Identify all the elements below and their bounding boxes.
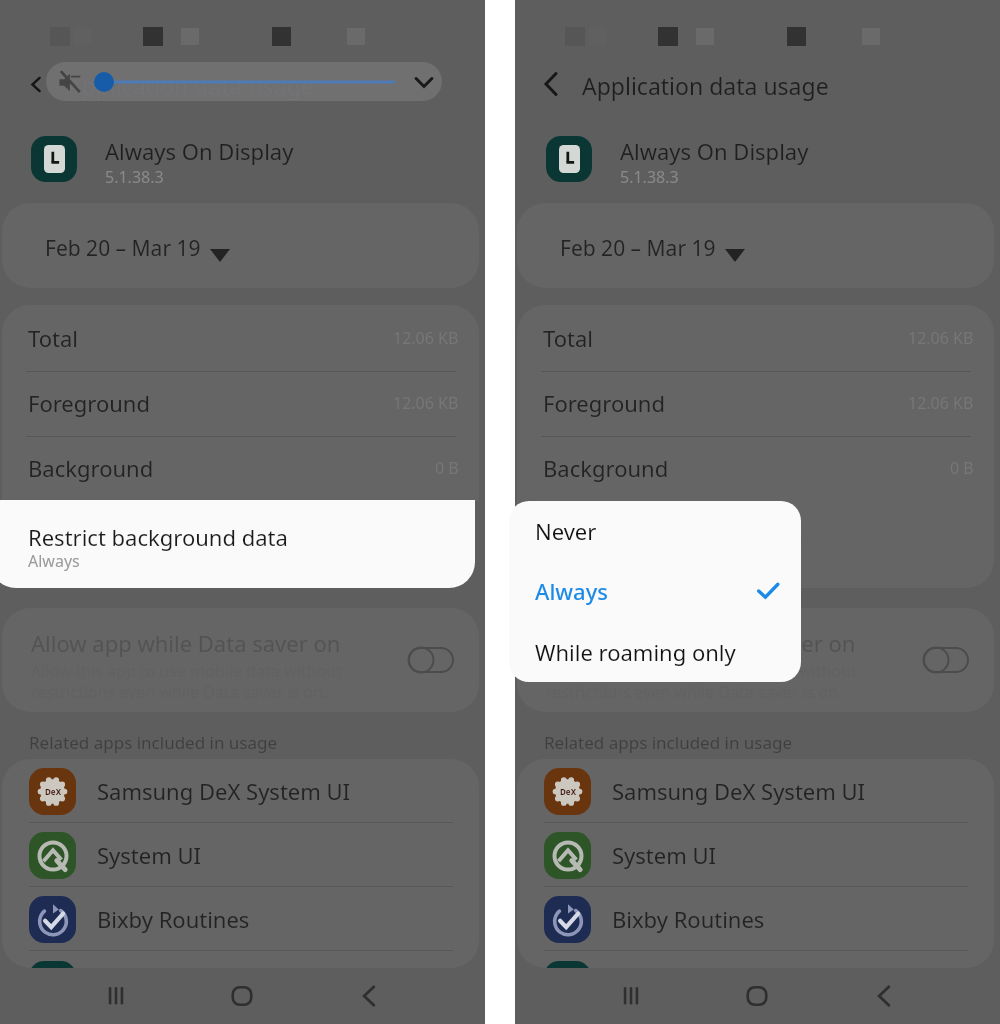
staticText: Application data usage: [67, 70, 314, 101]
button[interactable]: DeX: [29, 759, 479, 823]
button[interactable]: Feb 20 – Mar 19: [2, 203, 479, 288]
staticText: Foreground: [543, 388, 665, 418]
button[interactable]: Total: [543, 305, 974, 370]
button[interactable]: System UI: [29, 823, 479, 887]
staticText: DeX: [45, 786, 61, 797]
button[interactable]: Expand volume: [408, 66, 440, 98]
staticText: 0 B: [950, 457, 974, 479]
button[interactable]: Restrict background data: [517, 500, 994, 588]
button[interactable]: Back: [850, 968, 918, 1024]
button[interactable]: Home: [208, 968, 276, 1024]
staticText: Foreground: [28, 388, 150, 418]
button[interactable]: Recents: [597, 968, 665, 1024]
button[interactable]: Back: [16, 62, 56, 106]
button[interactable]: Mute volume: [53, 66, 85, 98]
staticText: Background: [543, 453, 669, 483]
button[interactable]: Recents: [82, 968, 150, 1024]
staticText: Always: [28, 550, 80, 572]
button[interactable]: DeX: [544, 759, 994, 823]
staticText: System UI: [97, 840, 202, 870]
staticText: Feb 20 – Mar 19: [45, 234, 201, 263]
button[interactable]: Allow app while Data saver on: [923, 647, 969, 673]
button[interactable]: Bixby Routines: [544, 887, 994, 951]
staticText: 0 B: [435, 457, 459, 479]
staticText: Bixby Routines: [97, 904, 250, 934]
button[interactable]: Allow app while Data saver on: [2, 608, 479, 712]
staticText: DeX: [560, 786, 576, 797]
staticText: Restrict background data: [28, 522, 288, 552]
staticText: 12.06 KB: [908, 327, 974, 349]
staticText: restrictions even while Data saver is on…: [546, 681, 843, 703]
staticText: Samsung DeX System UI: [97, 776, 351, 806]
button[interactable]: Back: [531, 62, 571, 106]
staticText: System UI: [612, 840, 717, 870]
staticText: Always: [535, 576, 608, 606]
staticText: Always On Display: [105, 136, 294, 166]
staticText: 5.1.38.3: [620, 166, 679, 188]
staticText: 12.06 KB: [908, 392, 974, 414]
staticText: Restrict background data: [543, 522, 803, 552]
staticText: Bixby Routines: [612, 904, 765, 934]
button[interactable]: Bixby Routines: [29, 887, 479, 951]
button[interactable]: Feb 20 – Mar 19: [517, 203, 994, 288]
button[interactable]: Total: [28, 305, 459, 370]
staticText: Never: [535, 516, 597, 546]
staticText: While roaming only: [535, 637, 736, 667]
staticText: Allow this app to use mobile data withou…: [546, 660, 857, 682]
button[interactable]: Foreground: [543, 370, 974, 435]
staticText: 12.06 KB: [393, 392, 459, 414]
button[interactable]: Home: [723, 968, 791, 1024]
staticText: Application data usage: [582, 70, 829, 101]
button[interactable]: Never: [535, 501, 781, 561]
button[interactable]: Allow app while Data saver on: [517, 608, 994, 712]
staticText: Total: [28, 323, 78, 353]
staticText: Feb 20 – Mar 19: [560, 234, 716, 263]
staticText: Allow app while Data saver on: [31, 628, 341, 658]
button[interactable]: Background: [28, 435, 459, 500]
staticText: 5.1.38.3: [105, 166, 164, 188]
staticText: Total: [543, 323, 593, 353]
staticText: Related apps included in usage: [29, 731, 278, 754]
button[interactable]: Allow app while Data saver on: [408, 647, 454, 673]
staticText: 12.06 KB: [393, 327, 459, 349]
button[interactable]: System UI: [544, 823, 994, 887]
button[interactable]: Back: [335, 968, 403, 1024]
button[interactable]: Always: [535, 561, 781, 621]
button[interactable]: Restrict background data: [0, 500, 475, 588]
button[interactable]: While roaming only: [535, 622, 781, 682]
staticText: Allow app while Data saver on: [546, 628, 856, 658]
staticText: Samsung DeX System UI: [612, 776, 866, 806]
staticText: Related apps included in usage: [544, 731, 793, 754]
button[interactable]: Foreground: [28, 370, 459, 435]
staticText: Always On Display: [620, 136, 809, 166]
button[interactable]: Background: [543, 435, 974, 500]
staticText: Background: [28, 453, 154, 483]
